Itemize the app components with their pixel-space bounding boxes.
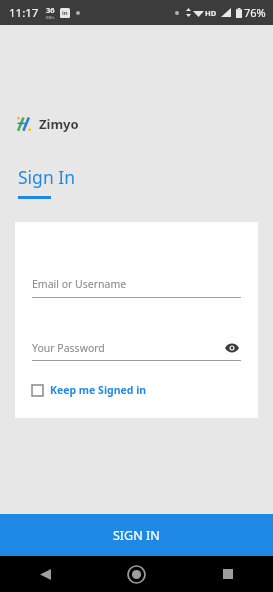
staticText: 36	[46, 5, 55, 15]
button[interactable]: Home	[91, 556, 182, 592]
staticText: HD	[205, 8, 217, 18]
staticText: in	[62, 9, 68, 17]
staticText: Email or Username	[32, 277, 127, 291]
staticText: Sign In	[18, 165, 75, 189]
staticText: KB/s	[46, 15, 55, 20]
staticText: Zimyo	[39, 115, 79, 133]
button[interactable]: Back	[0, 556, 91, 592]
button[interactable]: Keep me Signed in	[32, 383, 147, 397]
staticText: SIGN IN	[113, 527, 160, 544]
button[interactable]: SIGN IN	[0, 514, 273, 556]
staticText: 76%	[244, 5, 266, 20]
staticText: 11:17	[9, 5, 39, 21]
button[interactable]: Show password	[223, 339, 241, 357]
staticText: Your Password	[32, 341, 105, 355]
button[interactable]: Recents	[182, 556, 273, 592]
staticText: Keep me Signed in	[50, 383, 147, 397]
